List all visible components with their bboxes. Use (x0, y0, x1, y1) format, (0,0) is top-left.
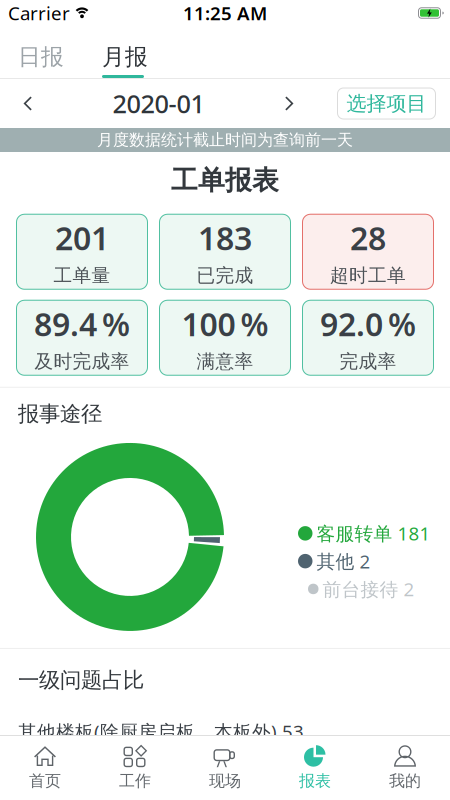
button[interactable]: 工作 (90, 739, 180, 797)
staticText: 报表 (299, 771, 331, 791)
staticText: Carrier (8, 1, 70, 25)
staticText: 及时完成率 (34, 350, 129, 373)
button[interactable]: 选择项目 (337, 87, 436, 119)
staticText: 现场 (209, 771, 241, 791)
staticText: 其他楼板(除厨房启板、本板外) 53 (18, 719, 304, 744)
button[interactable]: 日报 (18, 43, 64, 71)
staticText: 100 % (181, 302, 268, 345)
staticText: 89.4 % (34, 302, 130, 345)
button[interactable]: 月报 (102, 43, 148, 71)
button[interactable]: Previous month (21, 95, 34, 111)
staticText: 超时工单 (330, 264, 406, 287)
staticText: 183 (198, 216, 252, 259)
staticText: 选择项目 (346, 91, 426, 116)
staticText: 首页 (29, 771, 61, 791)
staticText: 前台接待 2 (322, 576, 414, 601)
staticText: 28 (350, 216, 386, 259)
staticText: 报事途径 (18, 401, 102, 427)
staticText: 完成率 (339, 350, 396, 373)
button[interactable]: 我的 (360, 739, 450, 797)
staticText: 已完成 (196, 264, 253, 287)
button[interactable]: 报表 (270, 739, 360, 797)
staticText: 一级问题占比 (18, 667, 144, 693)
staticText: 月度数据统计截止时间为查询前一天 (97, 130, 353, 150)
staticText: 工单量 (53, 264, 110, 287)
staticText: 其他 2 (316, 549, 370, 573)
staticText: 日报 (18, 43, 64, 71)
staticText: 客服转单 181 (316, 521, 430, 546)
staticText: 92.0 % (320, 302, 416, 345)
button[interactable]: 现场 (180, 739, 270, 797)
button[interactable]: 首页 (0, 739, 90, 797)
staticText: 11:25 AM (183, 1, 267, 25)
staticText: 我的 (389, 771, 421, 791)
staticText: 2020-01 (112, 87, 204, 120)
staticText: 201 (55, 216, 109, 259)
staticText: 工单报表 (171, 164, 279, 197)
staticText: 满意率 (196, 350, 253, 373)
staticText: 工作 (119, 771, 151, 791)
button[interactable]: Next month (283, 95, 296, 111)
staticText: 月报 (102, 43, 148, 71)
